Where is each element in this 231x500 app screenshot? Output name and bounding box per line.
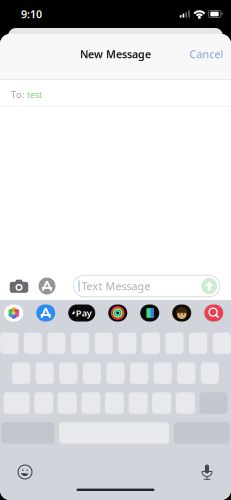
button[interactable]: Key	[24, 332, 42, 354]
staticText: 9:10	[21, 7, 42, 21]
button[interactable]: Key	[176, 392, 195, 414]
button[interactable]: Key	[152, 392, 171, 414]
button[interactable]: Key	[189, 332, 207, 354]
staticText: Cancel	[189, 47, 223, 61]
button[interactable]: Key	[71, 332, 89, 354]
button[interactable]: Key	[83, 362, 101, 384]
button[interactable]: Apple Pay	[68, 304, 95, 321]
button[interactable]: Camera	[4, 271, 33, 301]
button[interactable]: Apps	[33, 271, 60, 301]
button[interactable]: Key	[213, 332, 231, 354]
button[interactable]: Key	[36, 362, 54, 384]
button[interactable]: To:	[0, 80, 231, 107]
button[interactable]: Key	[201, 362, 219, 384]
button[interactable]: Key	[59, 362, 77, 384]
staticText: New Message	[80, 47, 151, 61]
button[interactable]: Keynote	[140, 304, 159, 321]
button[interactable]: Key	[47, 332, 66, 354]
button[interactable]: App Store	[36, 304, 55, 321]
button[interactable]: Key	[4, 392, 30, 414]
button[interactable]: Key	[95, 332, 113, 354]
button[interactable]: Fitness	[108, 304, 127, 321]
button[interactable]: Memoji	[172, 304, 191, 321]
button[interactable]: Key	[165, 332, 184, 354]
button[interactable]: Key	[105, 392, 124, 414]
button[interactable]: Key	[34, 392, 53, 414]
button[interactable]: Photos	[4, 304, 23, 321]
staticText: test	[25, 88, 42, 101]
button[interactable]: Key	[106, 362, 125, 384]
button[interactable]: Images	[204, 304, 223, 321]
button[interactable]: Key	[118, 332, 136, 354]
button[interactable]: Emoji	[10, 462, 40, 482]
button[interactable]: Key	[130, 362, 148, 384]
button[interactable]: Key	[81, 392, 100, 414]
button[interactable]: Key	[12, 362, 30, 384]
staticText: Pay	[76, 307, 92, 319]
button[interactable]: Key	[0, 332, 18, 354]
button[interactable]: Key	[142, 332, 160, 354]
button[interactable]: Key	[177, 362, 195, 384]
button[interactable]: Cancel	[182, 37, 231, 77]
button[interactable]: Dictation	[192, 462, 222, 482]
staticText: Text Message	[82, 279, 151, 293]
button[interactable]: Key	[129, 392, 148, 414]
staticText: To:	[11, 88, 25, 101]
button[interactable]: Key	[154, 362, 172, 384]
button[interactable]: Key	[58, 392, 77, 414]
